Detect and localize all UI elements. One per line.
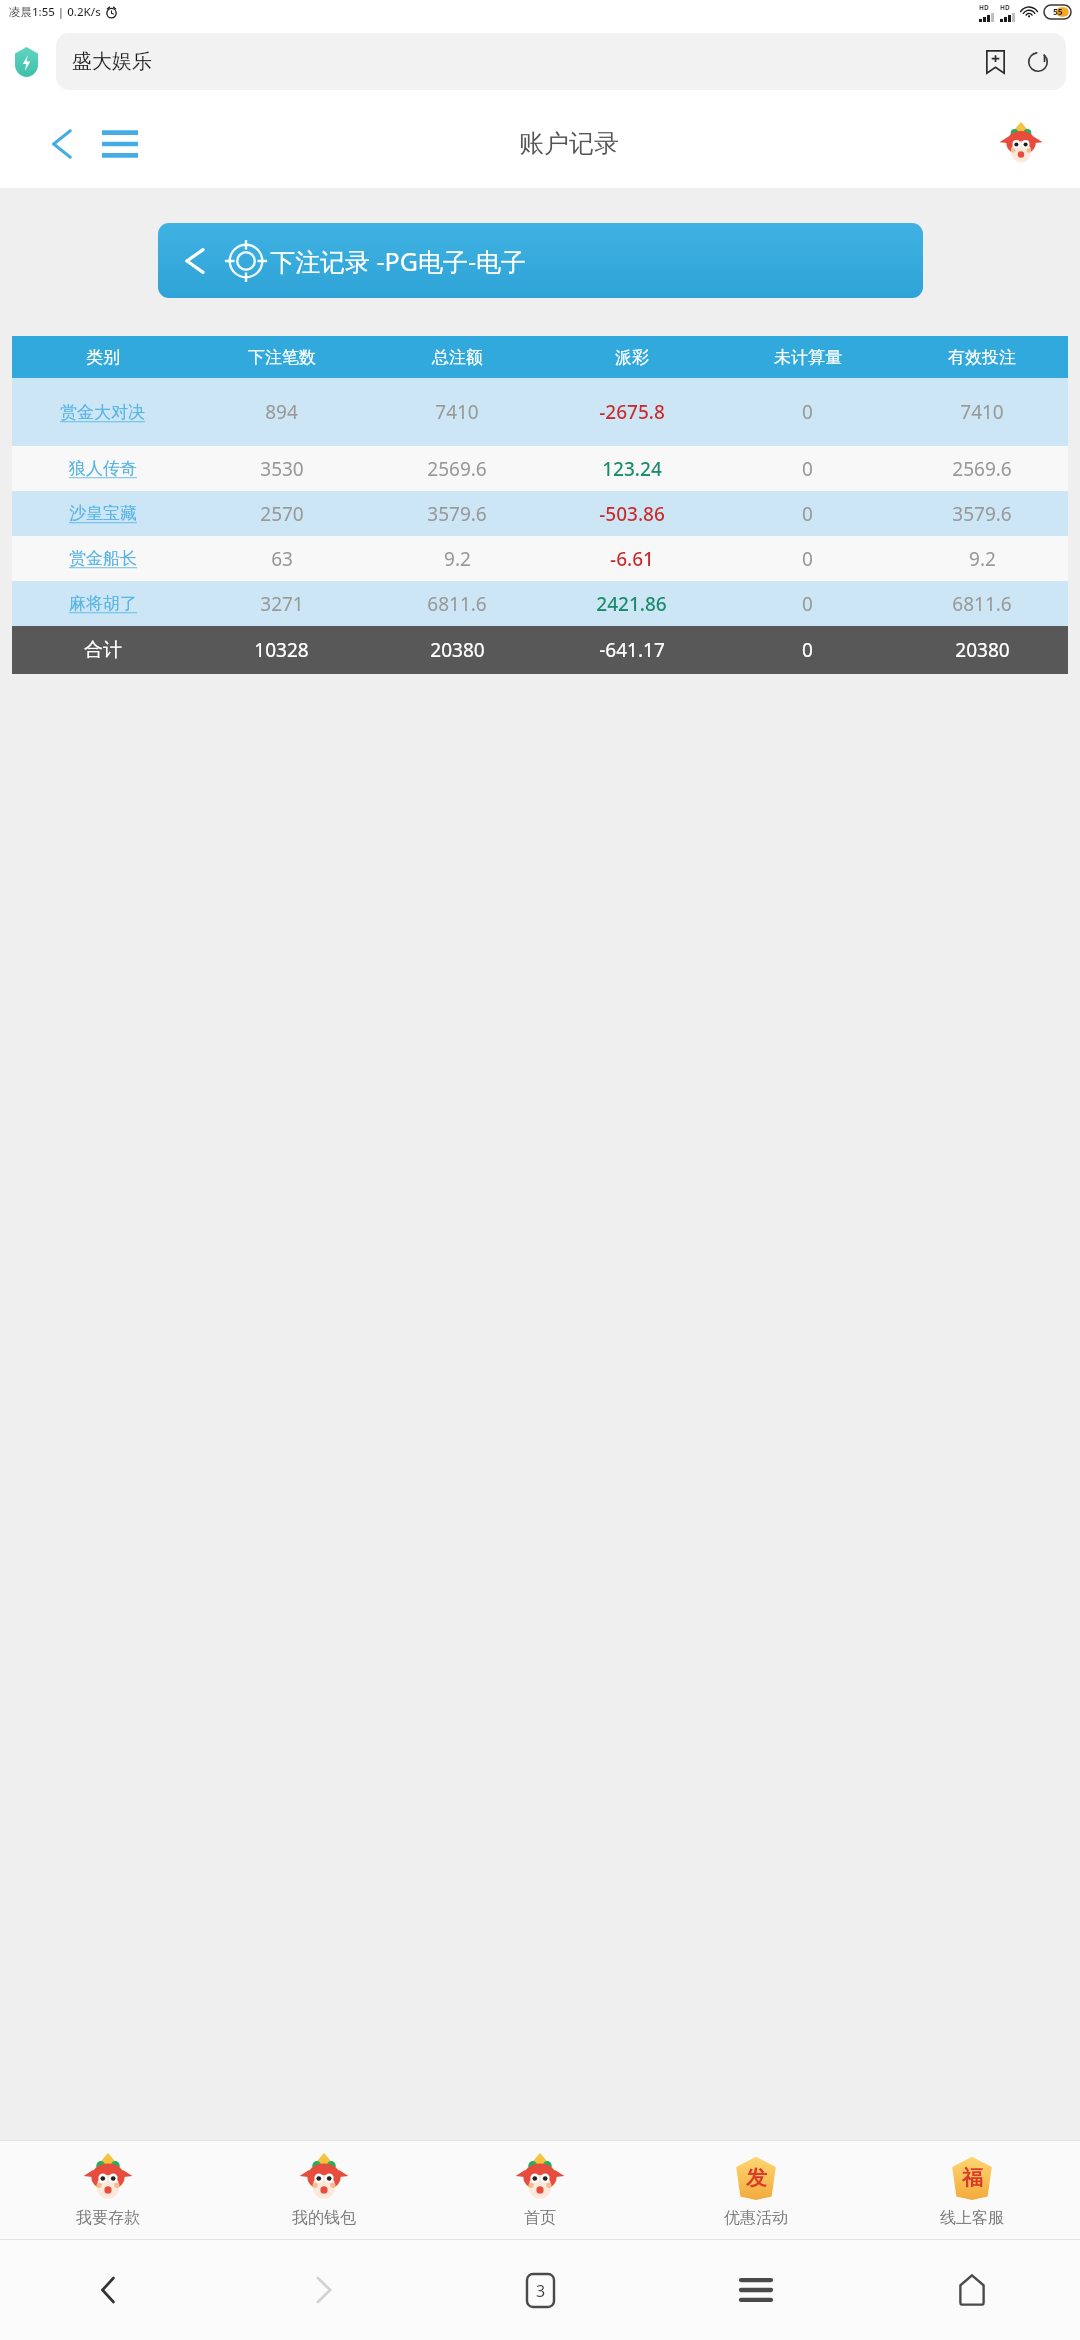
- staticText: 20380: [430, 637, 485, 663]
- staticText: 狼人传奇: [69, 458, 137, 479]
- button[interactable]: Back: [0, 2240, 216, 2340]
- staticText: 0: [802, 591, 813, 617]
- button[interactable]: 首页: [432, 2141, 648, 2239]
- staticText: 合计: [84, 638, 122, 662]
- staticText: 发: [746, 2165, 767, 2191]
- staticText: 0: [802, 637, 813, 663]
- staticText: 未计算量: [774, 347, 842, 368]
- staticText: 2421.86: [596, 591, 667, 617]
- staticText: 我的钱包: [292, 2208, 356, 2228]
- button[interactable]: Security shield: [14, 46, 38, 77]
- button[interactable]: Add bookmark: [980, 47, 1010, 77]
- button[interactable]: 盛大娱乐: [56, 33, 1066, 90]
- staticText: 总注额: [432, 347, 483, 368]
- button[interactable]: Reload: [1023, 47, 1053, 77]
- staticText: 类别: [86, 347, 120, 368]
- button[interactable]: Profile mascot: [998, 121, 1044, 167]
- button[interactable]: Menu: [648, 2240, 864, 2340]
- staticText: 0: [802, 546, 813, 572]
- staticText: 7410: [435, 399, 479, 425]
- button[interactable]: 我的钱包: [216, 2141, 432, 2239]
- staticText: 7410: [960, 399, 1004, 425]
- staticText: 20380: [955, 637, 1010, 663]
- staticText: 2569.6: [952, 456, 1012, 482]
- staticText: 0: [802, 456, 813, 482]
- staticText: 麻将胡了: [69, 593, 137, 614]
- button[interactable]: 赏金船长: [12, 536, 1068, 581]
- button[interactable]: Menu: [100, 122, 140, 166]
- staticText: 首页: [524, 2208, 556, 2228]
- staticText: 下注记录 -PG电子-电子: [270, 244, 526, 278]
- button[interactable]: 沙皇宝藏: [12, 491, 1068, 536]
- staticText: 下注笔数: [248, 347, 316, 368]
- staticText: 3530: [260, 456, 304, 482]
- staticText: 福: [962, 2165, 983, 2191]
- staticText: 3: [536, 2280, 546, 2302]
- staticText: 6811.6: [952, 591, 1012, 617]
- staticText: -503.86: [599, 501, 665, 527]
- staticText: 894: [265, 399, 298, 425]
- staticText: 9.2: [444, 546, 471, 572]
- staticText: 63: [271, 546, 293, 572]
- staticText: 线上客服: [940, 2208, 1004, 2228]
- staticText: 2570: [260, 501, 304, 527]
- staticText: 2569.6: [427, 456, 487, 482]
- staticText: -6.61: [610, 546, 654, 572]
- button[interactable]: 我要存款: [0, 2141, 216, 2239]
- button[interactable]: Tabs: 3 open: [432, 2240, 648, 2340]
- button[interactable]: 下注记录 -PG电子-电子: [158, 223, 923, 298]
- staticText: 0: [802, 399, 813, 425]
- staticText: 6811.6: [427, 591, 487, 617]
- staticText: 55: [1053, 6, 1063, 18]
- staticText: 账户记录: [519, 128, 619, 159]
- staticText: 沙皇宝藏: [69, 503, 137, 524]
- staticText: -2675.8: [599, 399, 665, 425]
- staticText: 优惠活动: [724, 2208, 788, 2228]
- button[interactable]: 麻将胡了: [12, 581, 1068, 626]
- staticText: 123.24: [602, 456, 662, 482]
- staticText: -641.17: [599, 637, 665, 663]
- staticText: 赏金船长: [69, 548, 137, 569]
- staticText: 0: [802, 501, 813, 527]
- staticText: 9.2: [969, 546, 996, 572]
- staticText: 凌晨1:55 | 0.2K/s: [9, 4, 101, 20]
- button[interactable]: 狼人传奇: [12, 446, 1068, 491]
- staticText: 3579.6: [427, 501, 487, 527]
- staticText: 盛大娱乐: [72, 49, 152, 74]
- button[interactable]: 发: [648, 2141, 864, 2239]
- button[interactable]: Home: [864, 2240, 1080, 2340]
- staticText: 有效投注: [948, 347, 1016, 368]
- staticText: 我要存款: [76, 2208, 140, 2228]
- staticText: 3271: [260, 591, 304, 617]
- staticText: 10328: [254, 637, 309, 663]
- button[interactable]: 福: [864, 2141, 1080, 2239]
- staticText: 赏金大对决: [60, 402, 145, 423]
- button[interactable]: Back: [46, 122, 78, 166]
- staticText: 3579.6: [952, 501, 1012, 527]
- button[interactable]: 赏金大对决: [12, 378, 1068, 446]
- staticText: 派彩: [615, 347, 649, 368]
- staticText: HD: [1000, 3, 1010, 12]
- staticText: HD: [979, 3, 989, 12]
